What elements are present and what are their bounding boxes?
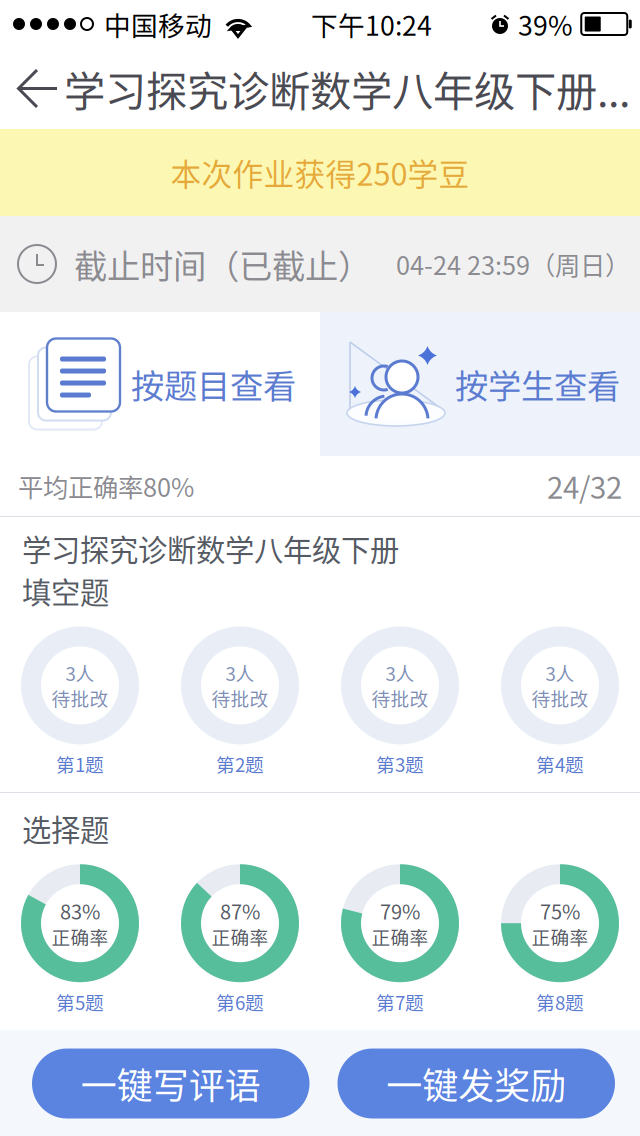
staticText: 待批改: [531, 684, 588, 711]
staticText: 待批改: [51, 684, 108, 711]
staticText: 按学生查看: [455, 360, 620, 408]
staticText: 填空题: [22, 569, 109, 612]
button[interactable]: Back: [12, 56, 64, 120]
staticText: 3人: [65, 659, 94, 686]
staticText: 学习探究诊断数学八年级下册...: [64, 59, 630, 118]
staticText: 75%: [540, 896, 580, 925]
button[interactable]: 75%: [480, 864, 640, 1015]
staticText: 待批改: [211, 684, 268, 711]
button[interactable]: 3人: [0, 626, 160, 777]
staticText: 第7题: [376, 988, 424, 1015]
staticText: 3人: [225, 659, 254, 686]
staticText: 待批改: [371, 684, 428, 711]
staticText: 中国移动: [104, 5, 212, 43]
staticText: 24/32: [547, 465, 622, 507]
staticText: 第1题: [56, 750, 104, 777]
staticText: 学习探究诊断数学八年级下册: [22, 527, 399, 569]
button[interactable]: 3人: [160, 626, 320, 777]
staticText: 79%: [380, 896, 420, 925]
staticText: 83%: [60, 896, 100, 925]
button[interactable]: 87%: [160, 864, 320, 1015]
button[interactable]: 一键写评语: [32, 1048, 309, 1118]
staticText: 正确率: [531, 923, 588, 950]
staticText: 第6题: [216, 988, 264, 1015]
staticText: 按题目查看: [131, 360, 296, 408]
staticText: 39%: [518, 5, 573, 43]
staticText: 本次作业获得250学豆: [170, 150, 469, 195]
staticText: 87%: [220, 896, 260, 925]
staticText: 第2题: [216, 750, 264, 777]
button[interactable]: 按学生查看: [320, 312, 640, 456]
button[interactable]: 3人: [480, 626, 640, 777]
staticText: 一键发奖励: [386, 1057, 566, 1109]
staticText: 第4题: [536, 750, 584, 777]
staticText: 截止时间（已截止）: [74, 240, 371, 288]
button[interactable]: 一键发奖励: [337, 1048, 615, 1118]
button[interactable]: 3人: [320, 626, 480, 777]
staticText: 平均正确率80%: [18, 468, 194, 504]
button[interactable]: 79%: [320, 864, 480, 1015]
staticText: 正确率: [211, 923, 268, 950]
button[interactable]: 83%: [0, 864, 160, 1015]
staticText: 3人: [545, 659, 574, 686]
staticText: 第8题: [536, 988, 584, 1015]
staticText: 第3题: [376, 750, 424, 777]
staticText: 下午10:24: [311, 5, 432, 43]
staticText: 3人: [385, 659, 414, 686]
staticText: 选择题: [22, 807, 109, 849]
staticText: 一键写评语: [81, 1057, 261, 1109]
staticText: 第5题: [56, 988, 104, 1015]
staticText: 正确率: [371, 923, 428, 950]
button[interactable]: 按题目查看: [0, 312, 320, 456]
staticText: 正确率: [51, 923, 108, 950]
staticText: 04-24 23:59（周日）: [396, 246, 630, 282]
